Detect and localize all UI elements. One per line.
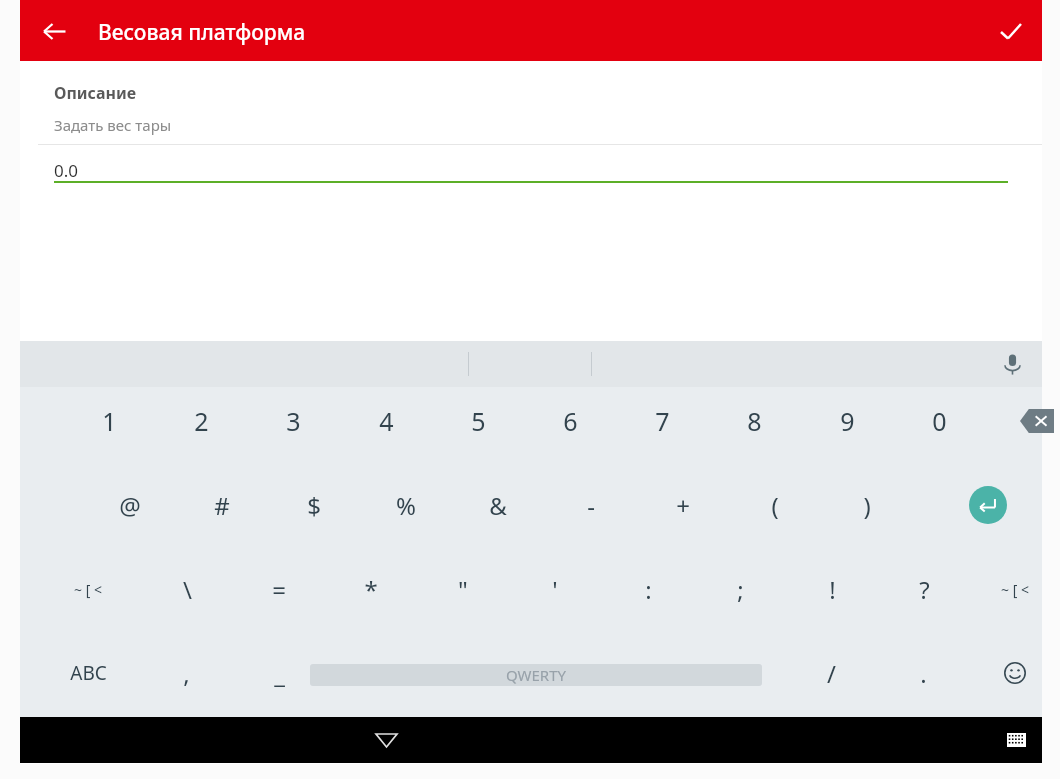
- staticText: @: [119, 489, 141, 522]
- button[interactable]: @: [84, 471, 176, 559]
- button[interactable]: ,: [140, 639, 232, 727]
- staticText: 6: [563, 404, 578, 438]
- staticText: 7: [655, 404, 670, 438]
- button[interactable]: More symbols: [42, 555, 134, 643]
- button[interactable]: 0: [893, 387, 985, 475]
- staticText: 0.0: [54, 159, 79, 182]
- button[interactable]: 2: [155, 387, 247, 475]
- button[interactable]: %: [360, 471, 452, 559]
- button[interactable]: (: [729, 471, 821, 559]
- staticText: ,: [183, 657, 190, 690]
- staticText: &: [489, 489, 507, 522]
- button[interactable]: Voice input: [992, 344, 1032, 384]
- button[interactable]: #: [176, 471, 268, 559]
- staticText: =: [272, 573, 286, 606]
- staticText: 4: [379, 404, 394, 438]
- staticText: -: [587, 489, 595, 522]
- button[interactable]: Change keyboard: [988, 717, 1044, 763]
- staticText: Весовая платформа: [98, 18, 306, 47]
- button[interactable]: ?: [878, 555, 970, 643]
- button[interactable]: QWERTY: [310, 664, 762, 686]
- button[interactable]: 9: [801, 387, 893, 475]
- staticText: ?: [919, 573, 930, 606]
- staticText: 5: [471, 404, 486, 438]
- button[interactable]: /: [785, 639, 877, 727]
- staticText: Задать вес тары: [54, 115, 172, 135]
- staticText: QWERTY: [506, 665, 567, 685]
- button[interactable]: ': [509, 555, 601, 643]
- staticText: 1: [102, 404, 117, 438]
- staticText: :: [645, 573, 652, 606]
- button[interactable]: -: [545, 471, 637, 559]
- button[interactable]: 6: [524, 387, 616, 475]
- button[interactable]: ": [417, 555, 509, 643]
- staticText: Описание: [54, 82, 137, 104]
- staticText: ~ [ <: [1001, 580, 1029, 599]
- button[interactable]: ABC: [42, 639, 134, 727]
- button[interactable]: 1: [63, 387, 155, 475]
- button[interactable]: 7: [616, 387, 708, 475]
- staticText: %: [396, 489, 416, 522]
- staticText: 2: [194, 404, 209, 438]
- button[interactable]: 3: [247, 387, 339, 475]
- staticText: ;: [737, 573, 744, 606]
- button[interactable]: _: [233, 639, 325, 727]
- button[interactable]: Enter: [942, 471, 1034, 559]
- button[interactable]: More symbols: [969, 555, 1060, 643]
- button[interactable]: \: [141, 555, 233, 643]
- button[interactable]: ): [821, 471, 913, 559]
- button[interactable]: $: [268, 471, 360, 559]
- button[interactable]: .: [877, 639, 969, 727]
- button[interactable]: &: [452, 471, 544, 559]
- button[interactable]: Back: [28, 5, 80, 57]
- button[interactable]: 5: [432, 387, 524, 475]
- staticText: *: [364, 573, 378, 606]
- staticText: _: [274, 657, 285, 690]
- staticText: ': [552, 573, 558, 606]
- staticText: ): [863, 489, 871, 522]
- staticText: ABC: [70, 660, 107, 686]
- staticText: /: [827, 657, 836, 690]
- button[interactable]: :: [602, 555, 694, 643]
- button[interactable]: Save: [984, 5, 1036, 57]
- staticText: #: [214, 489, 230, 522]
- staticText: ": [458, 573, 468, 606]
- button[interactable]: 0.0: [54, 153, 1008, 189]
- button[interactable]: 4: [340, 387, 432, 475]
- button[interactable]: Hide keyboard: [346, 717, 426, 763]
- staticText: !: [829, 573, 836, 606]
- button[interactable]: !: [786, 555, 878, 643]
- staticText: 9: [840, 404, 855, 438]
- button[interactable]: ;: [694, 555, 786, 643]
- button[interactable]: *: [325, 555, 417, 643]
- staticText: $: [307, 489, 321, 522]
- button[interactable]: +: [637, 471, 729, 559]
- button[interactable]: =: [233, 555, 325, 643]
- button[interactable]: Backspace: [991, 387, 1060, 475]
- staticText: 0: [932, 404, 947, 438]
- staticText: (: [771, 489, 779, 522]
- staticText: +: [676, 489, 690, 522]
- staticText: 8: [747, 404, 762, 438]
- staticText: \: [183, 573, 192, 606]
- staticText: .: [920, 657, 927, 690]
- button[interactable]: 8: [708, 387, 800, 475]
- staticText: ~ [ <: [74, 580, 102, 599]
- staticText: 3: [286, 404, 301, 438]
- button[interactable]: Emoji: [969, 639, 1060, 727]
